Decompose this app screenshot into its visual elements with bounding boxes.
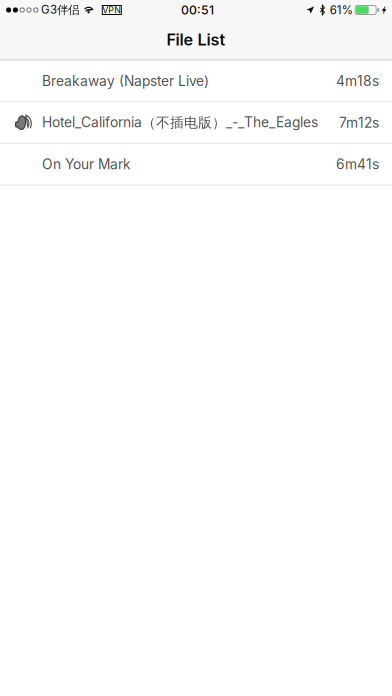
- staticText: Hotel_California（不插电版）_-_The_Eagles: [42, 114, 318, 131]
- button[interactable]: Hotel_California（不插电版）_-_The_Eagles: [0, 102, 392, 144]
- button[interactable]: Breakaway (Napster Live): [0, 61, 392, 102]
- staticText: On Your Mark: [42, 156, 131, 173]
- staticText: VPN: [102, 5, 121, 15]
- staticText: 6m41s: [336, 156, 379, 173]
- staticText: 00:51: [181, 3, 214, 17]
- staticText: 4m18s: [336, 73, 379, 89]
- staticText: File List: [166, 30, 225, 49]
- staticText: Breakaway (Napster Live): [42, 73, 209, 89]
- staticText: 61%: [330, 3, 353, 17]
- staticText: G3伴侣: [41, 3, 79, 17]
- staticText: 7m12s: [339, 114, 379, 131]
- button[interactable]: On Your Mark: [0, 144, 392, 186]
